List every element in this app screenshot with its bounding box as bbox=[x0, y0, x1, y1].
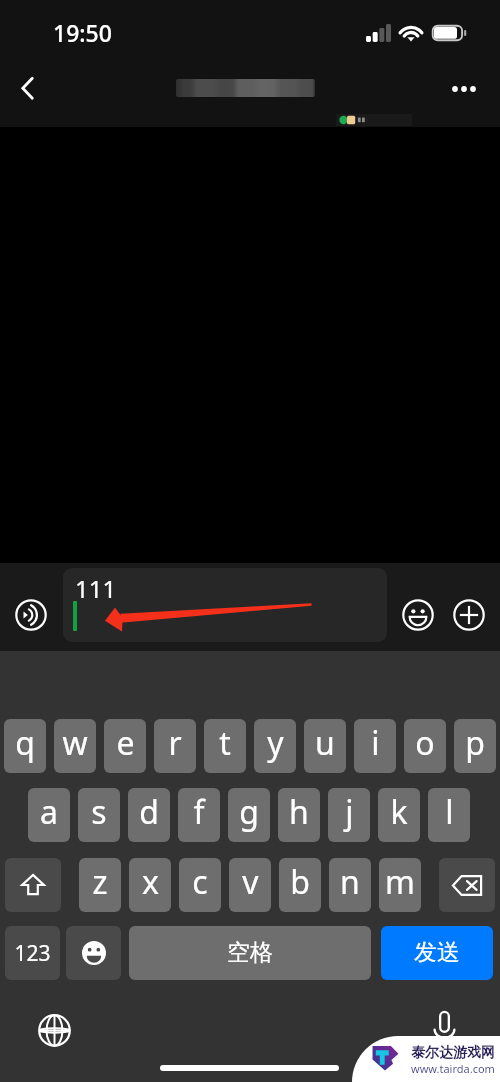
staticText: d bbox=[139, 790, 159, 834]
button[interactable]: 123 bbox=[5, 926, 60, 980]
staticText: 123 bbox=[14, 939, 51, 968]
staticText: s bbox=[91, 790, 107, 834]
staticText: 19:50 bbox=[53, 17, 112, 48]
staticText: i bbox=[371, 721, 380, 765]
button[interactable]: p bbox=[454, 719, 496, 773]
button[interactable]: f bbox=[178, 788, 220, 842]
button[interactable]: h bbox=[278, 788, 320, 842]
staticText: z bbox=[92, 860, 108, 904]
staticText: w bbox=[62, 721, 88, 765]
button[interactable]: Switch language bbox=[33, 1009, 75, 1051]
staticText: b bbox=[290, 860, 310, 904]
button[interactable]: Voice message bbox=[9, 593, 53, 637]
button[interactable]: g bbox=[228, 788, 270, 842]
button[interactable]: x bbox=[129, 858, 171, 912]
button[interactable]: o bbox=[404, 719, 446, 773]
staticText: u bbox=[315, 721, 335, 765]
button[interactable]: 空格 bbox=[129, 926, 371, 980]
staticText: k bbox=[390, 790, 408, 834]
button[interactable]: y bbox=[254, 719, 296, 773]
button[interactable]: a bbox=[28, 788, 70, 842]
staticText: y bbox=[267, 721, 284, 765]
staticText: h bbox=[289, 790, 309, 834]
staticText: n bbox=[340, 860, 360, 904]
staticText: 泰尔达游戏网 bbox=[411, 1044, 495, 1062]
staticText: g bbox=[239, 790, 259, 834]
staticText: www.tairda.com bbox=[411, 1061, 495, 1076]
staticText: a bbox=[40, 790, 58, 834]
staticText: 发送 bbox=[414, 938, 460, 967]
button[interactable]: l bbox=[428, 788, 470, 842]
button[interactable]: 发送 bbox=[381, 926, 493, 980]
button[interactable]: Emoji keyboard bbox=[66, 926, 121, 980]
button[interactable]: More options bbox=[439, 64, 489, 114]
button[interactable]: Emoji bbox=[396, 593, 440, 637]
button[interactable]: e bbox=[104, 719, 146, 773]
staticText: j bbox=[345, 790, 354, 834]
button[interactable]: s bbox=[78, 788, 120, 842]
button[interactable]: w bbox=[54, 719, 96, 773]
button[interactable]: r bbox=[154, 719, 196, 773]
button[interactable]: v bbox=[229, 858, 271, 912]
button[interactable]: Voice input bbox=[424, 1006, 465, 1047]
staticText: m bbox=[385, 860, 415, 904]
button[interactable]: Add attachment bbox=[447, 593, 491, 637]
button[interactable]: t bbox=[204, 719, 246, 773]
button[interactable]: 111 bbox=[63, 568, 387, 642]
button[interactable]: c bbox=[179, 858, 221, 912]
staticText: c bbox=[192, 860, 208, 904]
button[interactable]: m bbox=[379, 858, 421, 912]
button[interactable]: k bbox=[378, 788, 420, 842]
staticText: x bbox=[142, 860, 159, 904]
staticText: v bbox=[242, 860, 259, 904]
button[interactable]: z bbox=[79, 858, 121, 912]
button[interactable]: u bbox=[304, 719, 346, 773]
button[interactable]: Back bbox=[3, 64, 53, 114]
staticText: q bbox=[15, 721, 35, 765]
staticText: t bbox=[219, 721, 231, 765]
button[interactable]: b bbox=[279, 858, 321, 912]
staticText: f bbox=[193, 790, 205, 834]
staticText: 空格 bbox=[227, 938, 273, 967]
staticText: 111 bbox=[75, 572, 117, 605]
staticText: p bbox=[465, 721, 485, 765]
staticText: r bbox=[168, 721, 182, 765]
staticText: o bbox=[415, 721, 435, 765]
button[interactable]: j bbox=[328, 788, 370, 842]
button[interactable]: Shift bbox=[5, 858, 61, 912]
button[interactable]: i bbox=[354, 719, 396, 773]
button[interactable]: d bbox=[128, 788, 170, 842]
staticText: l bbox=[445, 790, 454, 834]
button[interactable]: n bbox=[329, 858, 371, 912]
staticText: e bbox=[116, 721, 135, 765]
button[interactable]: Backspace bbox=[439, 858, 495, 912]
button[interactable]: q bbox=[4, 719, 46, 773]
